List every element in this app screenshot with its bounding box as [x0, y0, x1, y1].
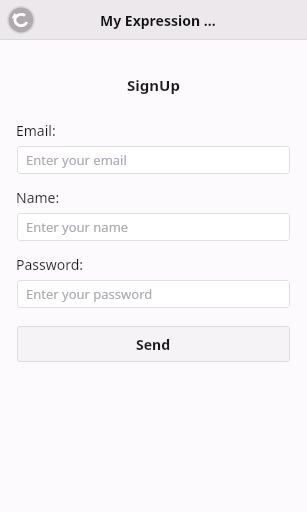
button[interactable]: Back [6, 5, 36, 35]
staticText: Enter your email [26, 151, 127, 169]
button[interactable]: Enter your name [17, 213, 290, 241]
button[interactable]: Enter your email [17, 146, 290, 174]
staticText: My Expression … [100, 11, 216, 30]
button[interactable]: Send [17, 326, 290, 362]
staticText: Send [136, 335, 171, 354]
staticText: SignUp [0, 75, 307, 95]
button[interactable]: Enter your password [17, 280, 290, 308]
staticText: Email: [16, 121, 56, 140]
staticText: Enter your password [26, 285, 153, 303]
staticText: Enter your name [26, 218, 129, 236]
staticText: Name: [16, 188, 60, 207]
staticText: Password: [16, 255, 84, 274]
